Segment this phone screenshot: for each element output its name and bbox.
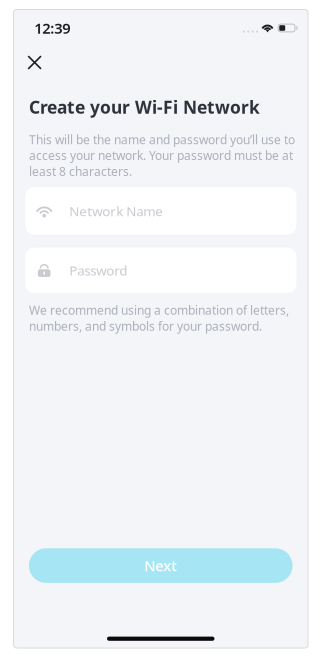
button[interactable]: Close bbox=[28, 51, 58, 73]
staticText: We recommend using a combination of lett… bbox=[29, 302, 289, 334]
button[interactable]: Network Name bbox=[25, 187, 296, 235]
staticText: Create your Wi-Fi Network bbox=[29, 95, 260, 118]
staticText: Network Name bbox=[69, 202, 163, 220]
staticText: Password bbox=[69, 261, 127, 279]
staticText: Next bbox=[144, 556, 177, 575]
button[interactable]: Next bbox=[29, 548, 293, 583]
staticText: This will be the name and password you’l… bbox=[29, 131, 295, 179]
staticText: 12:39 bbox=[34, 18, 70, 38]
button[interactable]: Password bbox=[25, 248, 296, 293]
